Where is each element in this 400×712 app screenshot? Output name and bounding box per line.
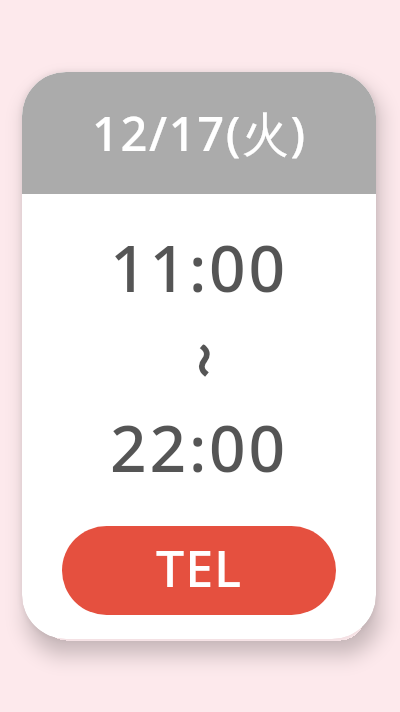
staticText: 22:00 [110,404,288,491]
staticText: TEL [156,534,243,602]
button[interactable]: TEL [62,526,336,615]
staticText: 11:00 [110,224,288,311]
staticText: 〜 [182,344,222,377]
staticText: 12/17(火) [92,101,307,165]
